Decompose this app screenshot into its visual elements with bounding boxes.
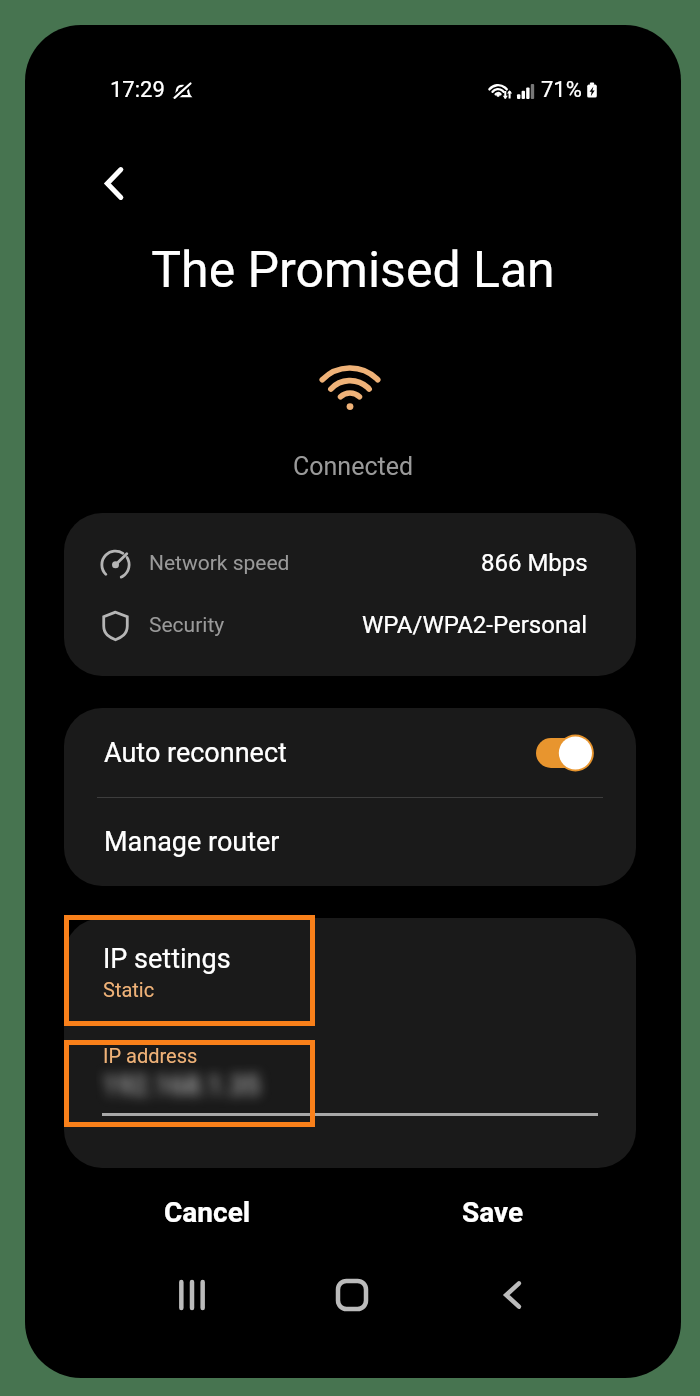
staticText: IP settings	[103, 943, 231, 975]
button[interactable]: Back	[88, 157, 140, 209]
staticText: Cancel	[164, 1196, 251, 1229]
staticText: Connected	[293, 452, 414, 481]
button[interactable]: Save	[350, 1182, 636, 1242]
staticText: WPA/WPA2-Personal	[362, 611, 588, 639]
staticText: 71%	[541, 77, 582, 103]
button[interactable]: Back	[472, 1255, 552, 1335]
button[interactable]: Home	[312, 1255, 392, 1335]
staticText: Manage router	[104, 826, 280, 858]
staticText: Network speed	[149, 551, 290, 576]
staticText: Static	[103, 978, 155, 1001]
staticText: 866 Mbps	[481, 549, 588, 577]
button[interactable]: Manage router	[64, 798, 636, 886]
staticText: Security	[149, 613, 225, 638]
button[interactable]: Cancel	[64, 1182, 350, 1242]
staticText: The Promised Lan	[151, 241, 555, 300]
button[interactable]: Auto reconnect	[64, 708, 636, 797]
button[interactable]: Recent apps	[152, 1255, 232, 1335]
staticText: Auto reconnect	[104, 737, 287, 769]
staticText: 17:29	[110, 77, 165, 103]
staticText: 192.168.1.35	[102, 1070, 260, 1102]
staticText: IP address	[103, 1044, 198, 1067]
staticText: Save	[462, 1196, 524, 1229]
